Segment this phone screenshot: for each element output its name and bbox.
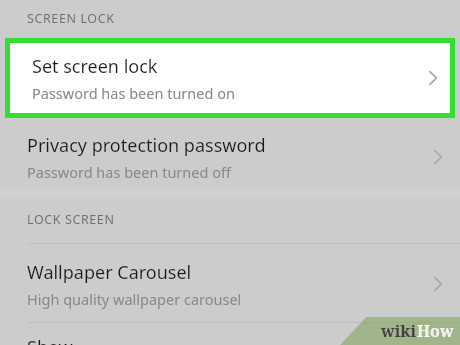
staticText: wiki: [381, 320, 417, 342]
staticText: Privacy protection password: [27, 133, 266, 158]
staticText: LOCK SCREEN: [27, 211, 115, 228]
staticText: High quality wallpaper carousel: [27, 289, 242, 309]
other: Open Wallpaper Carousel: [431, 274, 445, 294]
button[interactable]: Set screen lock: [10, 43, 450, 113]
button[interactable]: Wallpaper Carousel: [0, 246, 460, 322]
staticText: Password has been turned off: [27, 162, 231, 182]
other: Open Set screen lock: [426, 68, 440, 88]
other: Open Privacy protection password: [431, 147, 445, 167]
staticText: Password has been turned on: [32, 83, 235, 103]
button[interactable]: Privacy protection password: [0, 124, 460, 190]
staticText: SCREEN LOCK: [27, 10, 115, 27]
staticText: Set screen lock: [32, 54, 158, 79]
button[interactable]: Show: [0, 323, 460, 345]
staticText: Show: [27, 335, 73, 345]
staticText: How: [417, 320, 454, 342]
staticText: Wallpaper Carousel: [27, 260, 192, 285]
